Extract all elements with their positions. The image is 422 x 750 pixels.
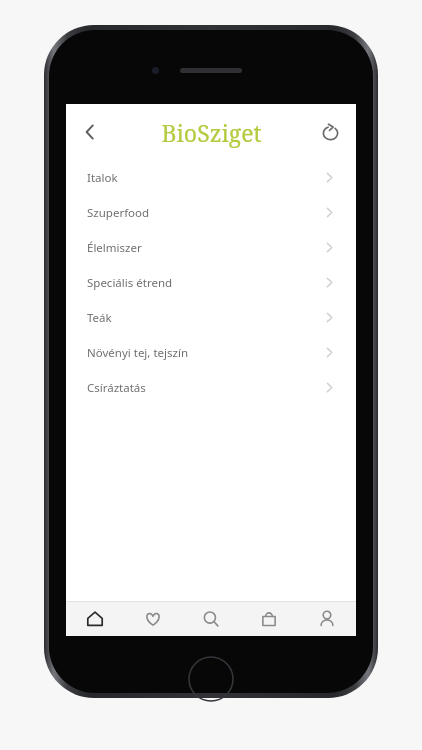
button[interactable]: Italok — [66, 160, 356, 195]
staticText: BioSziget — [161, 117, 262, 148]
staticText: Teák — [87, 310, 323, 326]
button[interactable]: Élelmiszer — [66, 230, 356, 265]
staticText: Italok — [87, 170, 323, 186]
staticText: Növényi tej, tejszín — [87, 345, 323, 361]
staticText: Speciális étrend — [87, 275, 323, 291]
staticText: Élelmiszer — [87, 240, 323, 256]
button[interactable]: Back — [70, 112, 110, 152]
button[interactable]: Teák — [66, 300, 356, 335]
button[interactable]: Search — [182, 602, 240, 636]
button[interactable]: Refresh — [310, 112, 350, 152]
button[interactable]: Cart — [240, 602, 298, 636]
staticText: Szuperfood — [87, 205, 323, 221]
button[interactable]: Csíráztatás — [66, 370, 356, 405]
button[interactable]: Szuperfood — [66, 195, 356, 230]
button[interactable]: Home — [66, 602, 124, 636]
button[interactable]: Speciális étrend — [66, 265, 356, 300]
staticText: Csíráztatás — [87, 380, 323, 396]
button[interactable]: Account — [298, 602, 356, 636]
button[interactable]: Növényi tej, tejszín — [66, 335, 356, 370]
button[interactable]: Favorites — [124, 602, 182, 636]
